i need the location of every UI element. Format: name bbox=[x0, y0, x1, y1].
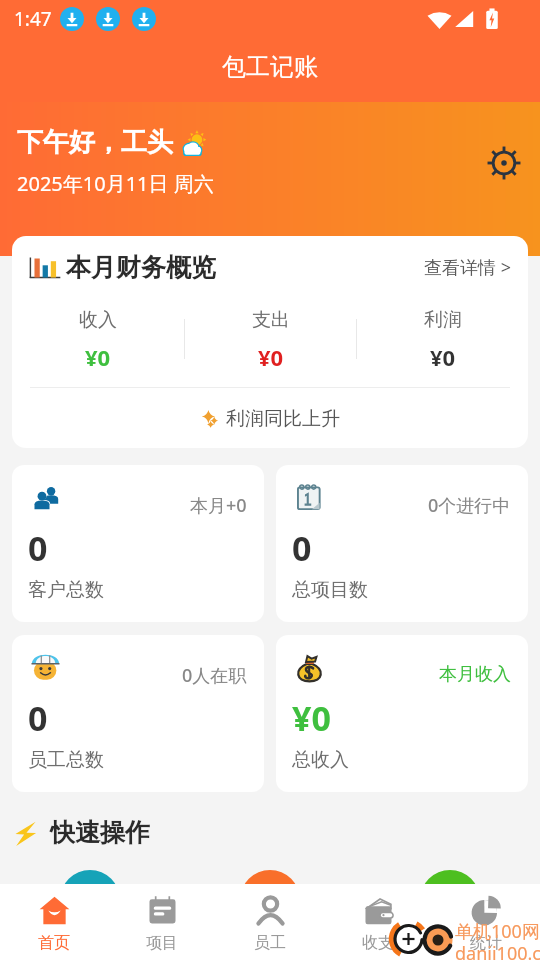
button[interactable]: 项目 bbox=[108, 888, 216, 960]
staticText: 1:47 bbox=[14, 6, 52, 32]
staticText: 查看详情 > bbox=[424, 255, 511, 280]
button[interactable]: 0人在职 bbox=[12, 635, 264, 792]
button[interactable]: Quick action bbox=[60, 870, 120, 930]
staticText: 0 bbox=[292, 525, 312, 571]
staticText: 0人在职 bbox=[182, 663, 247, 688]
button[interactable]: Settings bbox=[484, 143, 524, 183]
staticText: 员工总数 bbox=[28, 748, 104, 772]
staticText: 0 bbox=[28, 695, 48, 741]
staticText: 总项目数 bbox=[292, 578, 368, 602]
staticText: 统计 bbox=[470, 933, 502, 953]
staticText: 首页 bbox=[38, 933, 70, 953]
staticText: ¥0 bbox=[292, 695, 331, 741]
staticText: 利润同比上升 bbox=[226, 407, 340, 431]
staticText: 快速操作 bbox=[50, 817, 150, 848]
button[interactable]: 本月收入 bbox=[276, 635, 528, 792]
staticText: ¥0 bbox=[258, 342, 284, 370]
staticText: ¥0 bbox=[430, 342, 456, 370]
button[interactable]: Quick action bbox=[420, 870, 480, 930]
staticText: 下午好，工头 bbox=[17, 126, 173, 159]
staticText: 本月收入 bbox=[439, 663, 511, 686]
staticText: 2025年10月11日 周六 bbox=[17, 170, 214, 197]
staticText: 单机100网 bbox=[455, 919, 540, 944]
button[interactable]: Quick action bbox=[240, 870, 300, 930]
staticText: 利润 bbox=[424, 308, 462, 332]
staticText: 客户总数 bbox=[28, 578, 104, 602]
button[interactable]: 查看详情 > bbox=[424, 255, 511, 280]
staticText: ¥0 bbox=[85, 342, 111, 370]
staticText: 项目 bbox=[146, 933, 178, 953]
staticText: 支出 bbox=[252, 308, 290, 332]
staticText: 收入 bbox=[79, 308, 117, 332]
button[interactable]: 员工 bbox=[216, 888, 324, 960]
button[interactable]: 统计 bbox=[432, 888, 540, 960]
staticText: 本月+0 bbox=[190, 493, 247, 518]
button[interactable]: 本月+0 bbox=[12, 465, 264, 622]
staticText: 员工 bbox=[254, 933, 286, 953]
staticText: 包工记账 bbox=[222, 52, 318, 82]
staticText: 本月财务概览 bbox=[66, 252, 216, 283]
staticText: 0个进行中 bbox=[428, 493, 511, 518]
button[interactable]: 收支 bbox=[324, 888, 432, 960]
button[interactable]: 0个进行中 bbox=[276, 465, 528, 622]
staticText: danji100.com bbox=[455, 941, 540, 960]
staticText: 收支 bbox=[362, 933, 394, 953]
staticText: 总收入 bbox=[292, 748, 349, 772]
staticText: 0 bbox=[28, 525, 48, 571]
button[interactable]: 首页 bbox=[0, 888, 108, 960]
